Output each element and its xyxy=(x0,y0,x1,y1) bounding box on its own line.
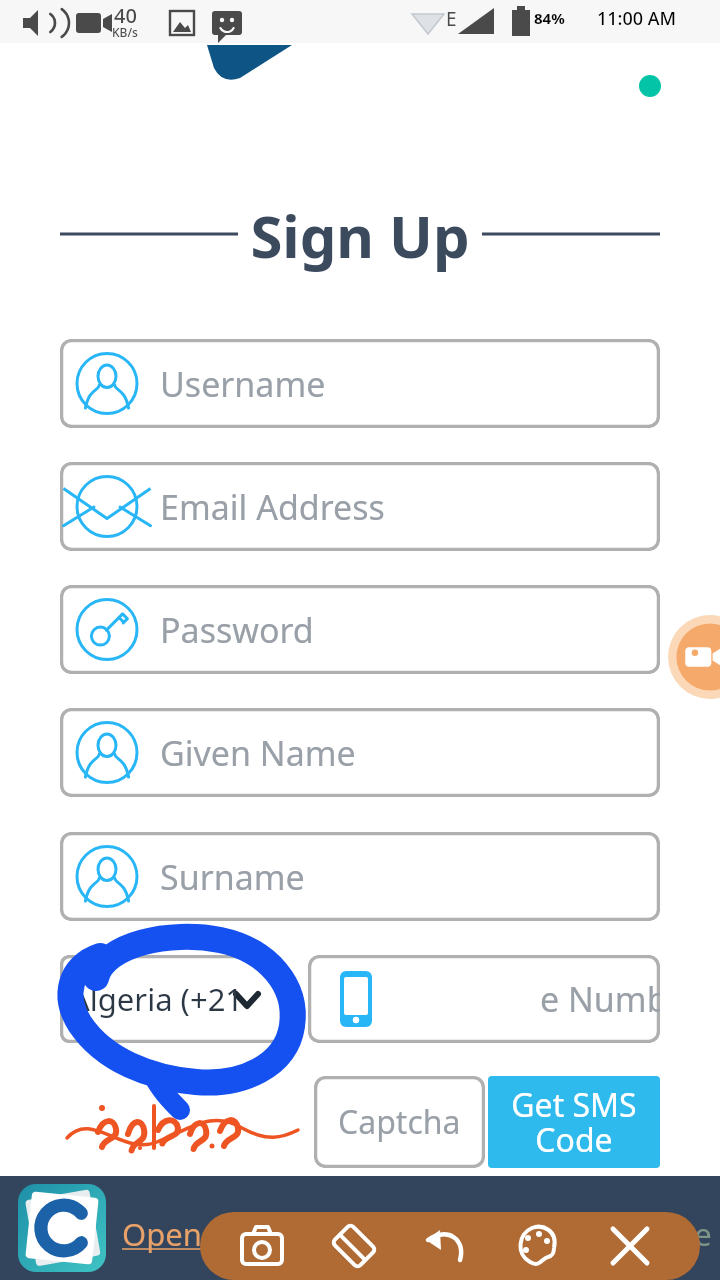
staticText: 40 xyxy=(114,2,137,29)
button[interactable]: Colors xyxy=(504,1212,572,1280)
button[interactable]: Close xyxy=(633,1213,712,1255)
staticText: Surname xyxy=(160,854,305,900)
button[interactable]: Captcha xyxy=(314,1076,485,1168)
staticText: Get SMS Code xyxy=(511,1083,637,1161)
staticText: Open in the Coinut APP xyxy=(122,1213,463,1255)
staticText: 11:00 AM xyxy=(597,6,677,31)
button[interactable]: Open in the Coinut APP xyxy=(122,1213,463,1255)
staticText: Username xyxy=(160,361,326,407)
staticText: 84% xyxy=(534,8,565,28)
staticText: Email Address xyxy=(160,484,385,530)
button[interactable]: Surname xyxy=(60,832,660,921)
staticText: Given Name xyxy=(160,730,356,776)
button[interactable]: Given Name xyxy=(60,708,660,797)
staticText: E xyxy=(446,6,457,32)
staticText: KB/s xyxy=(112,24,138,40)
button[interactable]: Eraser xyxy=(320,1212,388,1280)
button[interactable]: Close drawing xyxy=(596,1212,664,1280)
button[interactable]: Undo xyxy=(412,1212,480,1280)
staticText: Close xyxy=(633,1213,712,1255)
staticText: Password xyxy=(160,607,314,653)
button[interactable]: Username xyxy=(60,339,660,428)
button[interactable]: Email Address xyxy=(60,462,660,551)
button[interactable]: Password xyxy=(60,585,660,674)
staticText: Captcha xyxy=(338,1100,461,1144)
button[interactable]: e Numb xyxy=(308,955,660,1043)
button[interactable]: Coinut app xyxy=(18,1184,106,1272)
button[interactable]: Algeria (+21 xyxy=(60,955,283,1043)
button[interactable]: Record screen xyxy=(668,615,720,699)
staticText: e Numb xyxy=(540,976,660,1022)
button[interactable]: Screenshot xyxy=(228,1212,296,1280)
staticText: Algeria (+21 xyxy=(70,978,244,1020)
staticText: Sign Up xyxy=(0,196,720,275)
button[interactable]: Get SMS Code xyxy=(488,1076,660,1168)
